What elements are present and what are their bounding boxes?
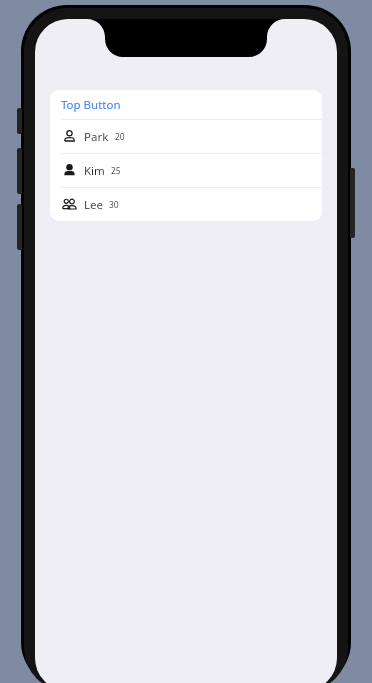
staticText: Lee bbox=[84, 197, 103, 213]
button[interactable]: Kim bbox=[50, 154, 322, 187]
staticText: 20 bbox=[115, 131, 125, 143]
staticText: Top Button bbox=[61, 97, 121, 113]
button[interactable]: Park bbox=[50, 120, 322, 153]
staticText: Kim bbox=[84, 163, 105, 179]
staticText: Park bbox=[84, 129, 109, 145]
button[interactable]: Lee bbox=[50, 188, 322, 221]
staticText: 25 bbox=[111, 165, 121, 177]
staticText: 30 bbox=[109, 199, 119, 211]
button[interactable]: Top Button bbox=[50, 90, 322, 119]
